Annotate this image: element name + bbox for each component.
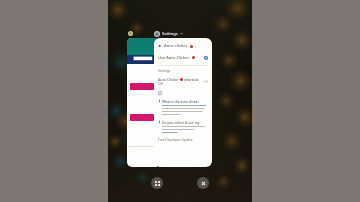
- staticText: Auto clicker: [164, 43, 188, 49]
- staticText: Settings: [158, 69, 171, 73]
- staticText: shortcut: [184, 77, 199, 82]
- staticText: Use Auto Clicker: [158, 55, 190, 60]
- staticText: Do you collect & use my data?: [162, 120, 208, 124]
- staticText: Settings: [162, 31, 178, 36]
- staticText: Off: [158, 82, 163, 86]
- button[interactable]: [127, 38, 157, 167]
- staticText: Free Developer Update: [158, 138, 193, 142]
- staticText: What is the auto clicker permission?: [162, 99, 208, 103]
- staticText: Auto Clicker: [158, 77, 179, 82]
- button[interactable]: App grid: [151, 177, 163, 189]
- button[interactable]: Settings: [154, 29, 183, 38]
- button[interactable]: Auto Clicker: [158, 77, 208, 86]
- button[interactable]: Close: [197, 177, 209, 189]
- button[interactable]: Use Auto Clicker: [158, 55, 208, 60]
- button[interactable]: Auto clicker: [154, 38, 212, 167]
